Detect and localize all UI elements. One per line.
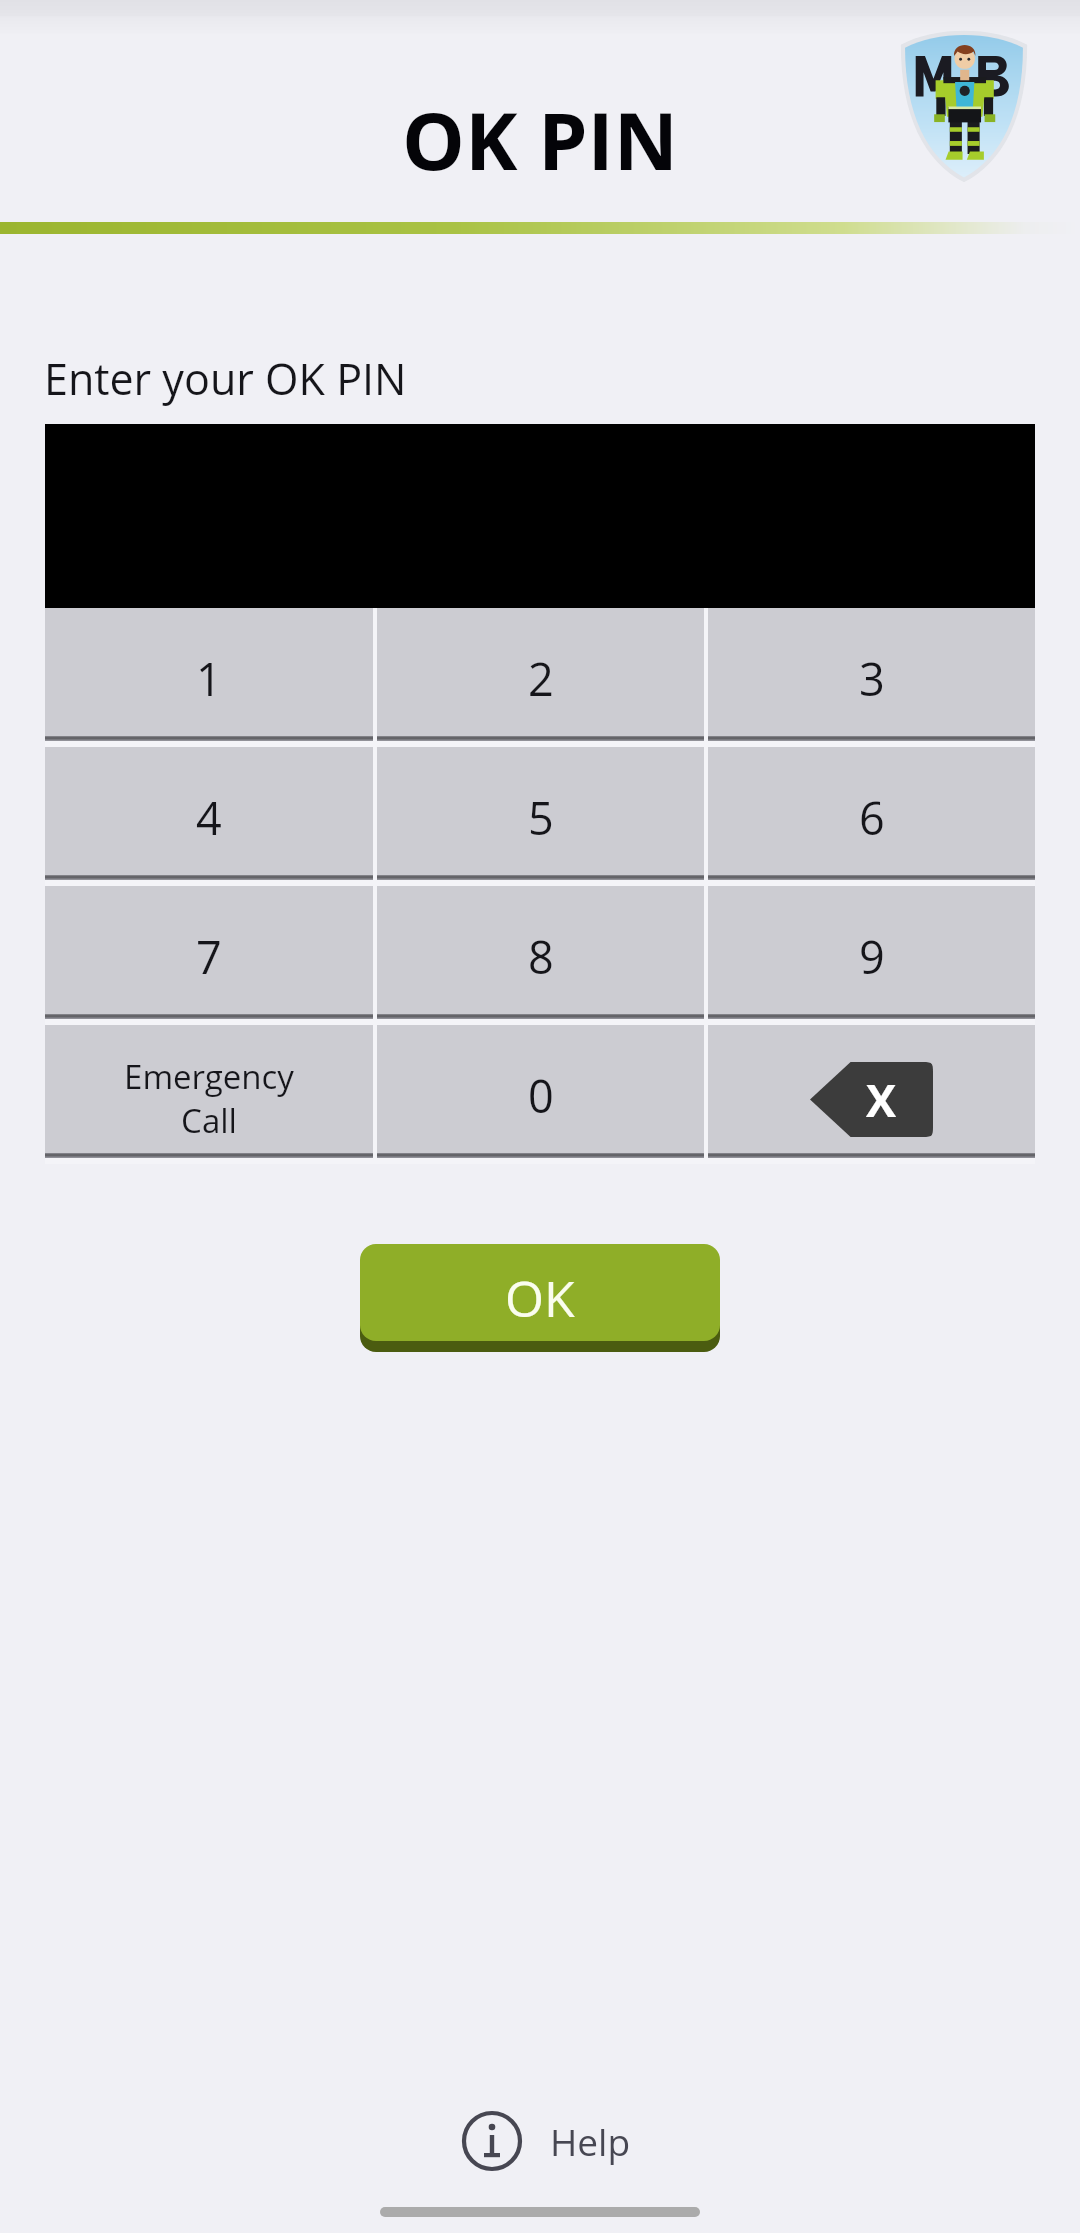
staticText: Enter your OK PIN (44, 349, 407, 408)
staticText: 6 (859, 787, 885, 848)
staticText: 7 (196, 926, 222, 987)
staticText: Help (550, 2116, 631, 2166)
staticText: OK (505, 1264, 575, 1332)
staticText: 8 (528, 926, 554, 987)
staticText: 9 (859, 926, 885, 987)
staticText: 0 (528, 1065, 554, 1126)
button[interactable]: 3 (708, 608, 1035, 747)
button[interactable]: 5 (377, 747, 704, 886)
staticText: 1 (196, 648, 222, 709)
button[interactable]: 2 (377, 608, 704, 747)
button[interactable]: 9 (708, 886, 1035, 1025)
staticText: OK PIN (0, 86, 1080, 194)
button[interactable]: MSB logo (893, 26, 1035, 188)
staticText: 4 (196, 787, 222, 848)
button[interactable]: Backspace (708, 1025, 1035, 1164)
staticText: 2 (528, 648, 554, 709)
staticText: X (866, 1069, 897, 1130)
button[interactable]: OK (360, 1244, 720, 1341)
staticText: Emergency Call (124, 1054, 294, 1142)
button[interactable]: 4 (45, 747, 373, 886)
staticText: 5 (528, 787, 554, 848)
button[interactable]: 8 (377, 886, 704, 1025)
button[interactable]: 6 (708, 747, 1035, 886)
staticText: 3 (859, 648, 885, 709)
button[interactable]: 0 (377, 1025, 704, 1164)
button[interactable]: Help (432, 2094, 654, 2188)
button[interactable]: Emergency Call (45, 1025, 373, 1164)
button[interactable]: 7 (45, 886, 373, 1025)
button[interactable]: 1 (45, 608, 373, 747)
